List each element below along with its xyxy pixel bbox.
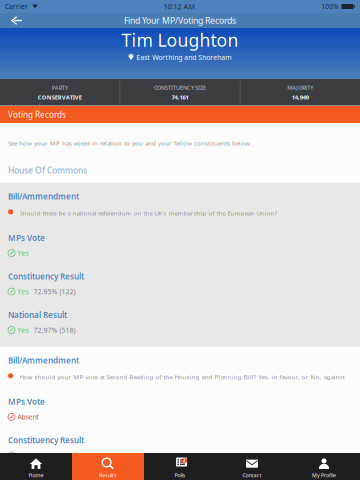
staticText: House Of Commons <box>8 164 87 176</box>
staticText: Yes <box>17 287 28 296</box>
staticText: My Profile <box>312 472 336 479</box>
staticText: Find Your MP/Voting Records <box>124 15 236 26</box>
staticText: 72.97% (518) <box>33 325 75 335</box>
staticText: PARTY <box>52 84 68 91</box>
staticText: Contact <box>242 472 261 479</box>
staticText: MPs Vote <box>8 396 45 407</box>
staticText: Yes <box>17 451 28 460</box>
staticText: Polls <box>174 472 185 479</box>
staticText: 2 <box>183 457 186 464</box>
button[interactable]: House Of Commons <box>0 147 360 183</box>
staticText: 72.95% (122) <box>33 287 75 296</box>
button[interactable]: Back <box>0 13 31 28</box>
staticText: Carrier <box>5 2 28 11</box>
staticText: Constituency Result <box>8 435 84 446</box>
button[interactable]: 2 <box>144 453 216 480</box>
staticText: Results <box>99 472 117 479</box>
staticText: 64.94% (77) <box>33 451 71 460</box>
staticText: 100% <box>321 2 339 11</box>
staticText: MAJORITY <box>287 84 313 91</box>
button[interactable]: Home <box>0 453 72 480</box>
staticText: Bill/Ammendment <box>8 355 79 366</box>
staticText: CONSERVATIVE <box>38 93 82 101</box>
button[interactable]: My Profile <box>288 453 360 480</box>
button[interactable]: Results <box>72 453 144 480</box>
staticText: Tim Loughton <box>121 28 238 52</box>
staticText: Yes <box>17 325 28 335</box>
button[interactable]: Contact <box>216 453 288 480</box>
staticText: Yes <box>17 248 28 258</box>
staticText: 14,949 <box>292 93 309 101</box>
staticText: CONSTITUENCY SIZE <box>154 84 206 91</box>
staticText: See how your MP has voted in relation to… <box>8 139 252 147</box>
staticText: Bill/Ammendment <box>8 191 79 202</box>
staticText: MPs Vote <box>8 232 45 243</box>
staticText: How should your MP vote at Second Readin… <box>20 373 345 381</box>
staticText: East Worthing and Shoreham <box>136 52 231 62</box>
staticText: Absent <box>17 412 39 422</box>
staticText: Home <box>28 472 43 479</box>
staticText: 74,161 <box>171 93 188 101</box>
staticText: Constituency Result <box>8 271 84 282</box>
staticText: Should there be a national referendum on… <box>20 209 278 217</box>
staticText: Voting Records <box>8 109 66 120</box>
staticText: National Result <box>8 309 67 320</box>
staticText: 10:12 AM <box>164 2 196 11</box>
